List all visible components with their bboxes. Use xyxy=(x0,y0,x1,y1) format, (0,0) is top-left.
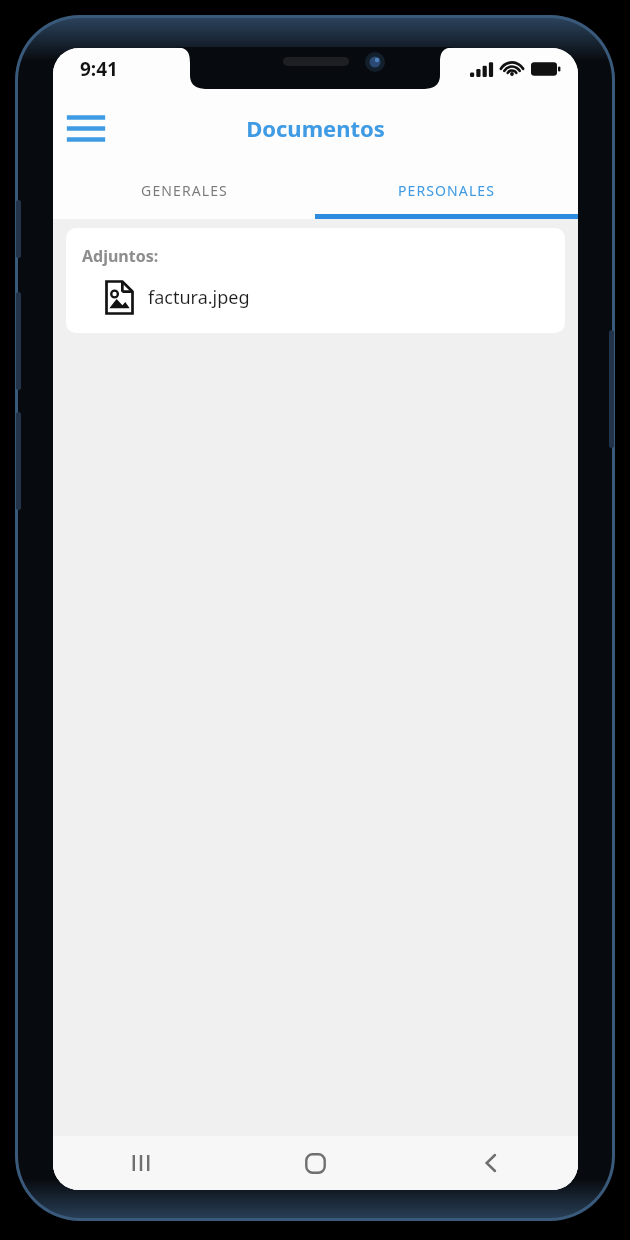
button[interactable]: GENERALES xyxy=(53,166,315,214)
button[interactable]: Open navigation menu xyxy=(59,101,113,155)
staticText: Adjuntos: xyxy=(82,245,159,267)
button[interactable]: Adjuntos: xyxy=(66,228,565,333)
staticText: 9:41 xyxy=(80,56,118,82)
button[interactable]: Home xyxy=(228,1136,403,1190)
button[interactable]: PERSONALES xyxy=(315,166,578,214)
other: Image file factura.jpeg xyxy=(105,280,134,315)
staticText: factura.jpeg xyxy=(148,285,250,310)
staticText: Documentos xyxy=(246,113,385,143)
button[interactable]: Image file factura.jpeg xyxy=(82,280,549,315)
button[interactable]: Recent apps xyxy=(53,1136,228,1190)
staticText: GENERALES xyxy=(141,181,228,200)
staticText: PERSONALES xyxy=(398,181,495,200)
button[interactable]: Back xyxy=(403,1136,578,1190)
